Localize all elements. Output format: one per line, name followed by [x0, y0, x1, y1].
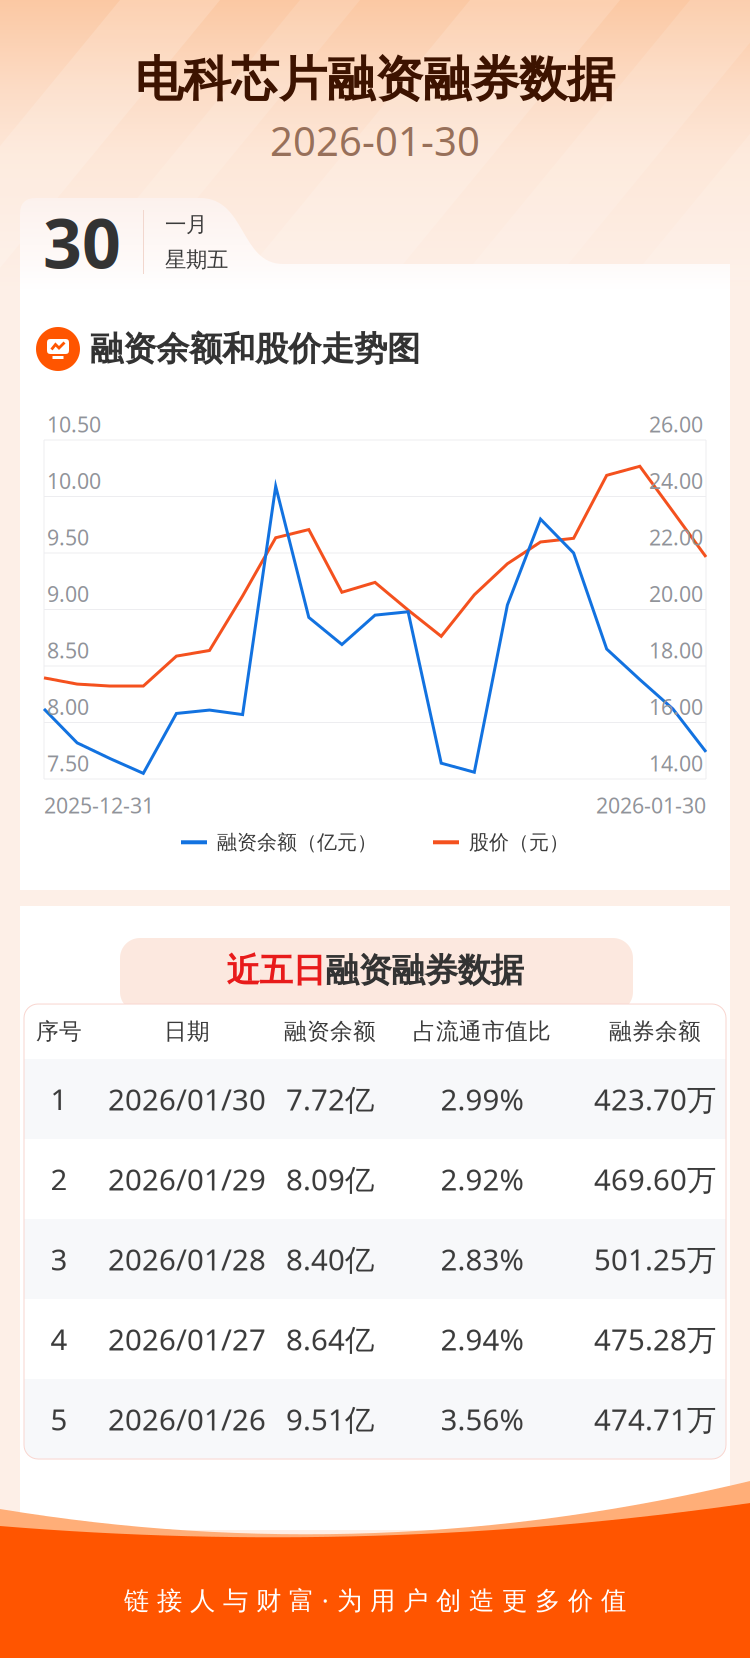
staticText: 融资余额和股价走势图: [90, 328, 420, 369]
staticText: 一月: [165, 211, 207, 237]
staticText: 8.00: [47, 692, 89, 721]
staticText: 20.00: [649, 579, 703, 608]
staticText: 2026/01/27: [108, 1319, 266, 1358]
staticText: 4: [50, 1319, 67, 1358]
staticText: 24.00: [649, 466, 703, 495]
staticText: 2026-01-30: [270, 114, 480, 167]
staticText: 475.28万: [594, 1319, 716, 1358]
staticText: 22.00: [649, 523, 703, 551]
staticText: 30: [43, 197, 121, 287]
staticText: 9.50: [47, 523, 89, 551]
staticText: 融资融券数据: [325, 950, 523, 991]
staticText: 3: [50, 1239, 67, 1278]
staticText: 9.51亿: [286, 1399, 374, 1438]
staticText: 1: [50, 1079, 67, 1118]
staticText: 8.50: [47, 636, 89, 664]
staticText: 423.70万: [594, 1079, 716, 1118]
staticText: 占流通市值比: [413, 1018, 551, 1045]
staticText: 10.50: [47, 410, 101, 438]
staticText: 9.00: [47, 579, 89, 608]
staticText: 电科芯片融资融券数据: [135, 50, 615, 109]
staticText: 融资余额（亿元）: [217, 830, 377, 855]
staticText: 星期五: [165, 246, 228, 273]
staticText: 2.94%: [440, 1319, 523, 1358]
staticText: 8.64亿: [286, 1319, 374, 1358]
staticText: 3.56%: [440, 1399, 523, 1438]
staticText: 2026/01/26: [108, 1399, 266, 1438]
staticText: 融券余额: [609, 1018, 701, 1045]
staticText: 501.25万: [594, 1239, 716, 1278]
staticText: 8.40亿: [286, 1239, 374, 1278]
staticText: 5: [50, 1399, 67, 1438]
staticText: 18.00: [649, 636, 703, 664]
staticText: 股价（元）: [469, 830, 569, 855]
staticText: 2.92%: [440, 1159, 523, 1198]
staticText: 469.60万: [594, 1159, 716, 1198]
staticText: 26.00: [649, 410, 703, 438]
staticText: 2: [50, 1159, 67, 1198]
staticText: 8.09亿: [286, 1159, 374, 1198]
staticText: 10.00: [47, 466, 101, 495]
staticText: 2.83%: [440, 1239, 523, 1278]
staticText: 14.00: [649, 749, 703, 777]
staticText: 近五日: [226, 950, 325, 991]
staticText: 2026-01-30: [596, 791, 706, 819]
staticText: 日期: [164, 1018, 210, 1045]
staticText: 16.00: [649, 692, 703, 721]
staticText: 序号: [36, 1018, 82, 1045]
staticText: 2026/01/28: [108, 1239, 266, 1278]
staticText: 7.72亿: [286, 1079, 374, 1118]
staticText: 2025-12-31: [44, 791, 154, 819]
staticText: 7.50: [47, 749, 89, 777]
staticText: 融资余额: [284, 1018, 376, 1045]
staticText: 2026/01/30: [108, 1079, 266, 1118]
staticText: 2026/01/29: [108, 1159, 266, 1198]
staticText: 474.71万: [594, 1399, 716, 1438]
staticText: 2.99%: [440, 1079, 523, 1118]
staticText: 链接人与财富·为用户创造更多价值: [124, 1583, 626, 1617]
